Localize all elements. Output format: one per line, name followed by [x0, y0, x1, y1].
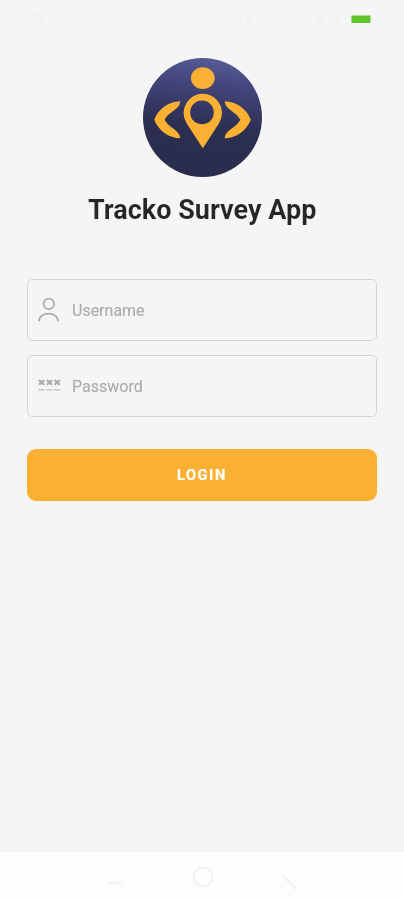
- staticText: Username: [72, 301, 145, 320]
- staticText: Password: [72, 377, 143, 396]
- staticText: LOGIN: [177, 467, 227, 484]
- button[interactable]: Username: [27, 279, 377, 341]
- button[interactable]: LOGIN: [27, 449, 377, 501]
- button[interactable]: Password: [27, 355, 377, 417]
- staticText: Tracko Survey App: [88, 194, 317, 226]
